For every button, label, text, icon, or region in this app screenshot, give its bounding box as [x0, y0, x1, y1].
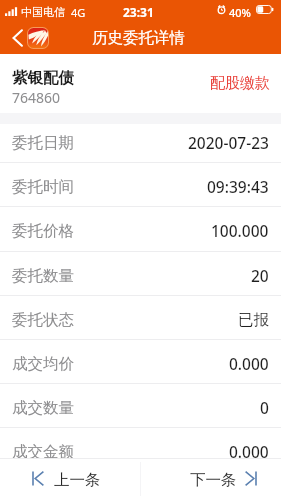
button[interactable]: 成交均价: [0, 339, 281, 383]
staticText: 09:39:43: [207, 176, 269, 197]
button[interactable]: 委托日期: [0, 118, 281, 162]
staticText: 成交均价: [12, 354, 74, 374]
staticText: 23:31: [123, 4, 154, 20]
button[interactable]: 委托状态: [0, 295, 281, 339]
staticText: 100.000: [211, 220, 269, 241]
button[interactable]: 下一条: [141, 459, 281, 500]
staticText: 0: [260, 397, 269, 418]
staticText: 4G: [71, 5, 86, 20]
staticText: 40%: [229, 5, 251, 20]
button[interactable]: 成交数量: [0, 383, 281, 427]
button[interactable]: 成交金额: [0, 427, 281, 471]
staticText: 2020-07-23: [188, 132, 269, 153]
staticText: 历史委托详情: [92, 28, 185, 48]
staticText: 中国电信: [21, 5, 65, 19]
staticText: 委托日期: [12, 133, 74, 153]
staticText: 委托时间: [12, 177, 74, 197]
staticText: 紫银配债: [12, 68, 74, 88]
button[interactable]: 上一条: [0, 459, 140, 500]
button[interactable]: 委托数量: [0, 251, 281, 295]
staticText: 成交数量: [12, 398, 74, 418]
button[interactable]: 委托价格: [0, 206, 281, 250]
staticText: 成交金额: [12, 442, 74, 462]
staticText: 上一条: [54, 470, 101, 490]
staticText: 已报: [238, 310, 269, 330]
staticText: 0.000: [229, 441, 269, 462]
staticText: 764860: [12, 88, 61, 107]
staticText: 0.000: [229, 353, 269, 374]
staticText: 20: [251, 265, 269, 286]
staticText: 下一条: [190, 470, 237, 490]
staticText: 配股缴款: [210, 74, 270, 93]
staticText: 委托数量: [12, 266, 74, 286]
staticText: 委托价格: [12, 221, 74, 241]
button[interactable]: Back: [0, 22, 34, 54]
staticText: 委托状态: [12, 310, 74, 330]
button[interactable]: 委托时间: [0, 162, 281, 206]
